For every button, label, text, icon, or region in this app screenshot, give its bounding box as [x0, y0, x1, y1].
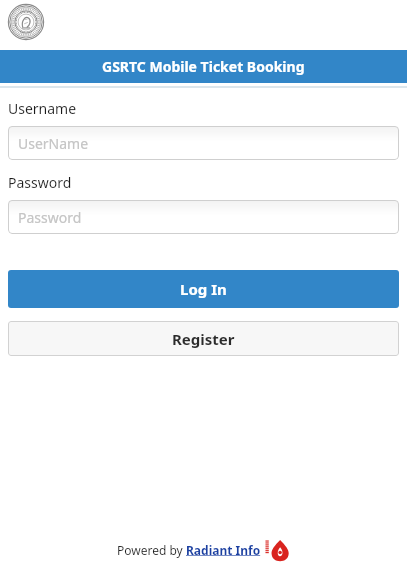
staticText: Register: [172, 329, 235, 349]
button[interactable]: Radiant Info: [186, 542, 261, 558]
button[interactable]: Register: [8, 321, 399, 356]
staticText: Log In: [180, 279, 227, 299]
staticText: UserName: [18, 134, 89, 153]
button[interactable]: Password: [8, 200, 399, 234]
staticText: GSRTC Mobile Ticket Booking: [102, 57, 305, 76]
other: GSRTC emblem: [8, 4, 44, 40]
staticText: Powered by: [117, 542, 186, 558]
staticText: Username: [8, 99, 77, 118]
staticText: Radiant Info: [186, 542, 261, 558]
staticText: Password: [8, 173, 72, 192]
other: Radiant Info logo: [264, 537, 290, 563]
staticText: Password: [18, 208, 82, 227]
button[interactable]: UserName: [8, 126, 399, 160]
button[interactable]: Log In: [8, 270, 399, 308]
